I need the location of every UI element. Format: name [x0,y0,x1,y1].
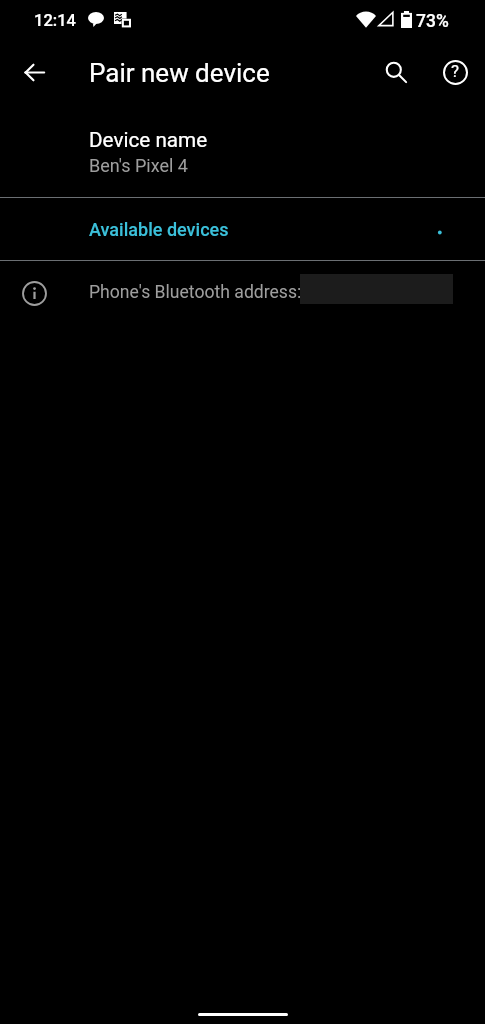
staticText: Available devices [89,219,229,240]
staticText: Pair new device [89,58,270,88]
staticText: ? [451,61,460,81]
button[interactable]: Available devices [0,198,485,260]
staticText: 12:14 [34,11,76,30]
staticText: 73% [416,11,449,32]
button[interactable]: Search [372,48,420,96]
staticText: Device name [89,128,208,152]
button[interactable]: Help [431,48,479,96]
button[interactable]: Navigate up [10,48,58,96]
staticText: Ben's Pixel 4 [89,155,188,176]
button[interactable]: Device name [0,104,485,197]
staticText: Phone's Bluetooth address: [89,282,302,303]
